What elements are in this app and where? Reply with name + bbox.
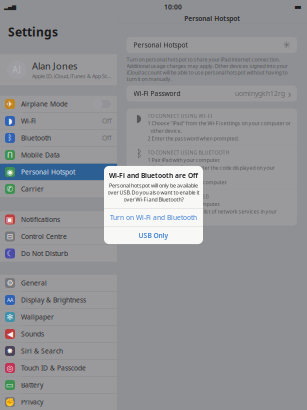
staticText: ☾	[6, 249, 13, 258]
staticText: ◎	[6, 363, 13, 372]
staticText: TO CONNECT USING WI-FI	[147, 112, 212, 119]
button[interactable]: ▭	[0, 377, 117, 393]
staticText: Mobile Data	[21, 150, 60, 159]
staticText: Alan Jones	[32, 60, 77, 72]
button[interactable]: ✆	[0, 181, 117, 197]
button[interactable]: ◎	[0, 360, 117, 376]
button[interactable]: ◗	[0, 113, 117, 129]
button[interactable]: ⊟	[0, 228, 117, 245]
staticText: 1 Plug iPad into your computer.	[147, 200, 219, 207]
button[interactable]: AA	[0, 292, 117, 308]
staticText: 1 Pair iPad with your computer.	[147, 156, 219, 163]
staticText: ◗	[136, 112, 142, 124]
button[interactable]: ◉	[0, 164, 117, 180]
staticText: Apple ID, iCloud, iTunes & App St…	[32, 73, 111, 80]
button[interactable]: ✊	[0, 394, 117, 410]
staticText: USB Only	[138, 231, 168, 240]
staticText: ꓵ	[7, 150, 13, 159]
staticText: Turn on Wi-Fi and Bluetooth	[110, 213, 197, 222]
staticText: Wallpaper	[21, 312, 54, 321]
staticText: Wi-Fi Password	[133, 89, 180, 98]
staticText: Privacy	[21, 397, 43, 406]
staticText: AA	[7, 296, 13, 303]
button[interactable]: AJ	[0, 54, 117, 85]
staticText: Wi-Fi and Bluetooth are Off	[109, 171, 198, 180]
button[interactable]: ✈	[0, 96, 117, 112]
staticText: ✊	[5, 397, 15, 406]
button[interactable]: ▣	[0, 211, 117, 228]
staticText: ◗	[8, 116, 12, 125]
staticText: 2 On iPad, tap Pair or enter the code di…	[147, 164, 274, 178]
staticText: Display & Brightness	[21, 295, 86, 304]
button[interactable]: Wi-Fi Password	[126, 85, 297, 101]
staticText: Turn on personal hotspot to share your i…	[126, 56, 279, 63]
staticText: Personal hotspot will only be available	[109, 182, 198, 189]
staticText: Touch ID & Passcode	[21, 363, 86, 372]
staticText: ▬	[294, 2, 302, 12]
staticText: Carrier	[21, 184, 44, 193]
button[interactable]: USB Only	[104, 227, 203, 244]
staticText: over Wi-Fi and Bluetooth?	[123, 196, 183, 203]
staticText: Wi-Fi	[21, 116, 36, 125]
staticText: iCloud account will be able to use perso…	[126, 69, 287, 76]
button[interactable]: ☾	[0, 245, 117, 262]
staticText: 3 Connect to iPad from computer.	[147, 179, 226, 186]
staticText: Do Not Disturb	[21, 249, 68, 258]
staticText: Off	[102, 116, 112, 125]
button[interactable]: ᛒ	[0, 130, 117, 146]
staticText: ›	[288, 86, 291, 101]
button[interactable]: ⚙	[0, 275, 117, 291]
staticText: other device.	[147, 127, 181, 134]
staticText: Personal Hotspot	[133, 41, 187, 49]
staticText: ◉	[6, 167, 13, 176]
staticText: ⚙	[6, 278, 13, 287]
staticText: Bluetooth	[21, 133, 51, 142]
staticText: 2 Choose iPad from the list of network s…	[147, 208, 276, 222]
staticText: Battery	[21, 380, 43, 389]
staticText: Control Centre	[21, 232, 67, 241]
staticText: ◀	[7, 329, 13, 338]
staticText: AJ	[12, 64, 20, 75]
staticText: Siri & Search	[21, 346, 63, 355]
staticText: ᛒ	[7, 134, 12, 142]
staticText: turn it on manually.	[126, 75, 171, 82]
staticText: Sounds	[21, 329, 44, 338]
button[interactable]: ✸	[0, 343, 117, 359]
staticText: Settings	[8, 24, 58, 40]
button[interactable]: ✻	[0, 309, 117, 325]
staticText: 1 Choose "iPad" from the Wi-Fi settings …	[147, 120, 290, 127]
button[interactable]: Turn on Wi-Fi and Bluetooth	[104, 209, 203, 226]
staticText: Notifications	[21, 215, 60, 224]
button[interactable]: ◀	[0, 326, 117, 342]
staticText: ⊟	[6, 232, 13, 241]
staticText: ✳	[283, 40, 291, 50]
staticText: ✸	[6, 346, 13, 355]
staticText: ▣	[6, 215, 14, 224]
staticText: Airplane Mode	[21, 99, 68, 108]
staticText: Additional usage charges may apply. Othe…	[126, 62, 287, 70]
staticText: ▂▄▆	[4, 4, 16, 10]
staticText: uominygkh12rg	[235, 89, 285, 98]
staticText: ⌁	[136, 193, 142, 205]
staticText: ✻	[6, 312, 13, 321]
staticText: 2 Enter the password when prompted.	[147, 135, 238, 142]
staticText: ✈	[6, 99, 13, 108]
staticText: 10:00	[164, 3, 182, 11]
staticText: Personal Hotspot	[184, 14, 240, 23]
button[interactable]: Personal Hotspot	[126, 37, 297, 53]
staticText: Personal Hotspot	[21, 167, 75, 176]
staticText: ✆	[6, 184, 13, 193]
staticText: TO CONNECT USING USB	[147, 193, 208, 200]
staticText: over USB. Do you also want to enable it	[107, 189, 199, 196]
button[interactable]: ꓵ	[0, 147, 117, 163]
staticText: TO CONNECT USING BLUETOOTH	[147, 149, 229, 156]
staticText: ᛒ	[136, 149, 142, 159]
staticText: General	[21, 278, 47, 287]
staticText: Off	[102, 133, 112, 142]
staticText: ▭	[6, 380, 14, 389]
